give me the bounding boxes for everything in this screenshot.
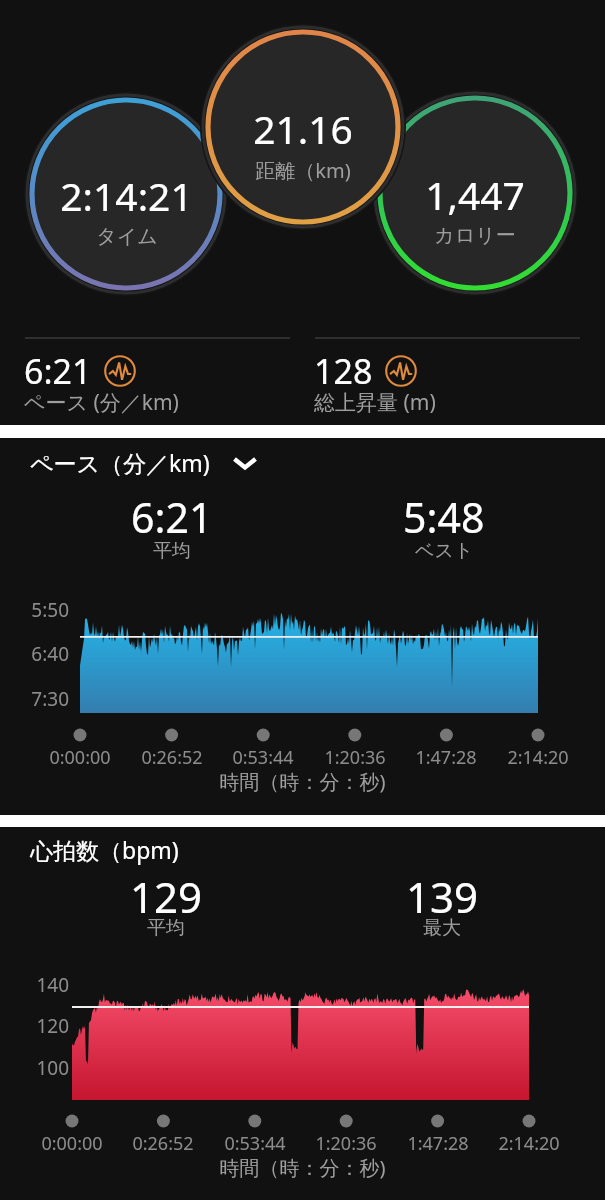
staticText: 6:21: [24, 348, 92, 394]
button[interactable]: 6:21: [24, 348, 294, 423]
other: detail: [104, 355, 136, 387]
staticText: タイム: [96, 224, 158, 249]
staticText: 21.16: [253, 102, 353, 155]
staticText: 5:50: [0, 597, 69, 623]
staticText: 140: [0, 972, 69, 998]
staticText: 7:30: [0, 686, 69, 712]
staticText: 最大: [423, 916, 461, 940]
staticText: 2:14:21: [60, 169, 193, 222]
staticText: 0:26:52: [93, 1131, 233, 1156]
staticText: 1:20:36: [276, 1131, 416, 1156]
staticText: 139: [406, 868, 479, 925]
staticText: 時間（時：分：秒): [0, 1154, 605, 1181]
button[interactable]: 21.16: [193, 102, 413, 184]
staticText: 6:40: [0, 641, 69, 667]
button[interactable]: ペース（分／km): [30, 447, 258, 478]
button[interactable]: 5:48: [324, 489, 564, 569]
staticText: 2:14:20: [459, 1131, 599, 1156]
staticText: 平均: [147, 916, 185, 940]
staticText: カロリー: [434, 223, 516, 248]
staticText: 0:53:44: [185, 1131, 325, 1156]
staticText: 総上昇量 (m): [314, 388, 436, 417]
staticText: 0:00:00: [10, 745, 150, 770]
other: detail: [385, 355, 417, 387]
staticText: 129: [130, 868, 203, 925]
staticText: 1,447: [425, 168, 525, 221]
staticText: 128: [314, 348, 373, 394]
staticText: 1:47:28: [368, 1131, 508, 1156]
staticText: 1:20:36: [285, 745, 425, 770]
staticText: 100: [0, 1055, 69, 1081]
staticText: 5:48: [403, 489, 485, 545]
staticText: 120: [0, 1013, 69, 1039]
staticText: ペース（分／km): [30, 447, 210, 478]
staticText: ベスト: [415, 539, 474, 563]
staticText: 平均: [153, 539, 191, 563]
staticText: 1:47:28: [376, 745, 516, 770]
button[interactable]: 139: [322, 868, 562, 949]
staticText: 心拍数（bpm): [30, 834, 179, 865]
staticText: 6:21: [131, 489, 213, 545]
staticText: 0:00:00: [2, 1131, 142, 1156]
button[interactable]: 129: [46, 868, 286, 949]
button[interactable]: 心拍数（bpm): [30, 834, 179, 865]
staticText: 時間（時：分：秒): [0, 768, 605, 795]
staticText: 0:53:44: [193, 745, 333, 770]
button[interactable]: 1,447: [365, 168, 585, 248]
other: Expand: [232, 450, 258, 476]
button[interactable]: 6:21: [52, 489, 292, 569]
staticText: ペース (分／km): [24, 388, 179, 417]
staticText: 距離（km): [255, 157, 351, 184]
staticText: 2:14:20: [468, 745, 605, 770]
button[interactable]: 128: [314, 348, 584, 423]
button[interactable]: 2:14:21: [16, 169, 236, 249]
staticText: 0:26:52: [102, 745, 242, 770]
